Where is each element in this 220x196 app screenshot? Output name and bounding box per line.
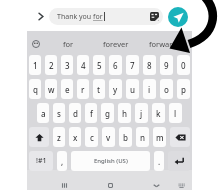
staticText: 8 — [147, 60, 152, 71]
staticText: t — [97, 84, 101, 95]
button[interactable]: u — [126, 79, 139, 99]
button[interactable]: l — [169, 103, 182, 123]
staticText: b — [123, 132, 128, 143]
staticText: Thank you — [57, 12, 93, 22]
button[interactable]: g — [101, 103, 114, 123]
button[interactable] — [170, 127, 190, 147]
staticText: u — [130, 84, 136, 95]
button[interactable]: Expand toolbar — [33, 9, 48, 24]
button[interactable]: 3 — [61, 55, 73, 75]
staticText: 7 — [130, 60, 135, 71]
button[interactable]: j — [135, 103, 148, 123]
button[interactable]: forward — [139, 31, 186, 56]
button[interactable]: for — [44, 31, 92, 56]
button[interactable]: q — [29, 79, 41, 99]
staticText: l — [174, 108, 177, 119]
button[interactable]: n — [136, 127, 149, 147]
button[interactable]: h — [118, 103, 131, 123]
button[interactable]: 4 — [77, 55, 89, 75]
staticText: w — [48, 84, 55, 95]
staticText: j — [140, 108, 143, 119]
button[interactable]: 8 — [143, 55, 156, 75]
staticText: r — [81, 84, 85, 95]
button[interactable]: . — [154, 151, 164, 171]
button[interactable]: v — [102, 127, 115, 147]
button[interactable]: y — [109, 79, 122, 99]
staticText: English (US) — [94, 157, 128, 165]
staticText: s — [57, 108, 61, 119]
button[interactable]: Recent apps — [56, 177, 72, 193]
staticText: z — [57, 132, 61, 143]
button[interactable]: Send — [168, 7, 188, 27]
button[interactable]: Thank you — [49, 8, 163, 25]
button[interactable]: a — [37, 103, 49, 123]
staticText: forever — [103, 39, 129, 49]
staticText: 1 — [33, 60, 38, 71]
staticText: e — [65, 84, 70, 95]
button[interactable]: e — [61, 79, 73, 99]
button[interactable]: b — [119, 127, 132, 147]
staticText: v — [106, 132, 111, 143]
button[interactable]: o — [160, 79, 173, 99]
button[interactable]: 6 — [109, 55, 122, 75]
staticText: 4 — [81, 60, 86, 71]
button[interactable]: 7 — [126, 55, 139, 75]
button[interactable]: x — [69, 127, 81, 147]
button[interactable]: Switch keyboard — [173, 177, 189, 193]
staticText: f — [90, 108, 93, 119]
staticText: 0 — [181, 60, 186, 71]
button[interactable]: 9 — [160, 55, 173, 75]
staticText: forward — [149, 39, 177, 49]
staticText: g — [105, 108, 110, 119]
button[interactable]: s — [53, 103, 65, 123]
button[interactable]: , — [57, 151, 67, 171]
button[interactable]: !#1 — [29, 151, 53, 171]
button[interactable]: English (US) — [71, 151, 150, 171]
staticText: 5 — [97, 60, 102, 71]
button[interactable]: p — [177, 79, 190, 99]
button[interactable]: w — [45, 79, 57, 99]
staticText: y — [113, 84, 118, 95]
staticText: !#1 — [36, 156, 47, 166]
button[interactable] — [29, 127, 49, 147]
button[interactable]: 0 — [177, 55, 190, 75]
button[interactable]: Stickers — [150, 12, 159, 21]
button[interactable]: 1 — [29, 55, 41, 75]
button[interactable]: Back — [148, 177, 164, 193]
staticText: a — [41, 108, 46, 119]
button[interactable]: 2 — [45, 55, 57, 75]
staticText: 2 — [49, 60, 54, 71]
button[interactable]: r — [77, 79, 89, 99]
button[interactable]: z — [53, 127, 65, 147]
button[interactable] — [168, 151, 190, 171]
staticText: 6 — [113, 60, 118, 71]
button[interactable]: t — [93, 79, 105, 99]
button[interactable]: m — [153, 127, 166, 147]
staticText: o — [164, 84, 169, 95]
staticText: p — [181, 84, 186, 95]
button[interactable]: forever — [92, 31, 139, 56]
button[interactable]: k — [152, 103, 165, 123]
staticText: 9 — [164, 60, 169, 71]
staticText: k — [156, 108, 161, 119]
staticText: , — [61, 156, 64, 167]
staticText: x — [73, 132, 78, 143]
staticText: i — [148, 84, 151, 95]
staticText: . — [158, 156, 161, 167]
button[interactable]: d — [69, 103, 81, 123]
button[interactable]: c — [85, 127, 98, 147]
staticText: h — [122, 108, 128, 119]
button[interactable]: f — [85, 103, 97, 123]
staticText: q — [33, 84, 38, 95]
button[interactable]: i — [143, 79, 156, 99]
staticText: 3 — [65, 60, 70, 71]
staticText: for — [93, 12, 103, 22]
button[interactable]: 5 — [93, 55, 105, 75]
staticText: for — [63, 39, 74, 49]
button[interactable]: Home — [102, 177, 118, 193]
staticText: n — [140, 132, 146, 143]
staticText: c — [90, 132, 94, 143]
staticText: d — [73, 108, 78, 119]
button[interactable]: Google search — [27, 31, 44, 56]
staticText: m — [156, 132, 164, 143]
